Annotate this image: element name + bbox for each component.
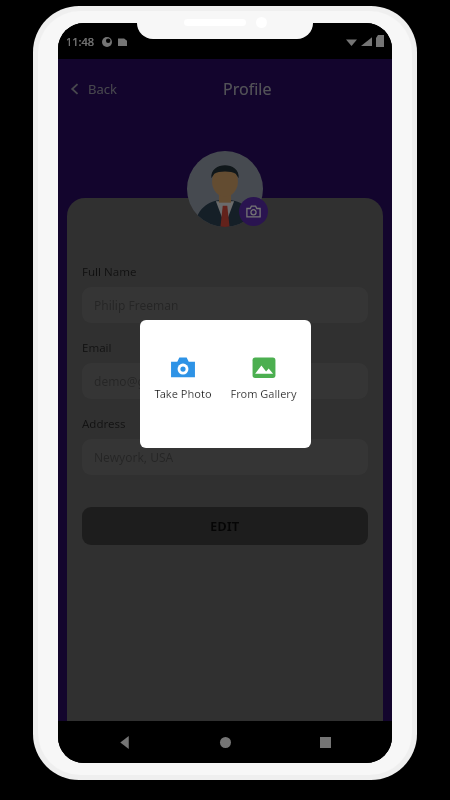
staticText: demo@gmail.com bbox=[94, 373, 197, 389]
staticText: From Gallery bbox=[230, 386, 297, 401]
button[interactable]: Back bbox=[110, 727, 140, 757]
button[interactable]: Philip Freeman bbox=[82, 287, 368, 323]
staticText: 11:48 bbox=[66, 34, 95, 49]
button[interactable]: Newyork, USA bbox=[82, 439, 368, 475]
staticText: Profile bbox=[223, 78, 272, 100]
button[interactable]: demo@gmail.com bbox=[82, 363, 368, 399]
staticText: Back bbox=[88, 80, 117, 98]
button[interactable]: Home bbox=[210, 727, 240, 757]
button[interactable]: Change profile photo bbox=[239, 197, 268, 226]
staticText: EDIT bbox=[210, 517, 240, 535]
button[interactable]: Take Photo bbox=[150, 353, 216, 403]
staticText: Take Photo bbox=[154, 386, 212, 401]
button[interactable]: From Gallery bbox=[226, 353, 301, 403]
staticText: Address bbox=[82, 416, 126, 432]
button[interactable]: Recents bbox=[310, 727, 340, 757]
staticText: Philip Freeman bbox=[94, 297, 179, 313]
button[interactable]: Back bbox=[58, 74, 127, 104]
staticText: Email bbox=[82, 340, 112, 356]
staticText: Full Name bbox=[82, 264, 137, 280]
staticText: Newyork, USA bbox=[94, 449, 174, 465]
